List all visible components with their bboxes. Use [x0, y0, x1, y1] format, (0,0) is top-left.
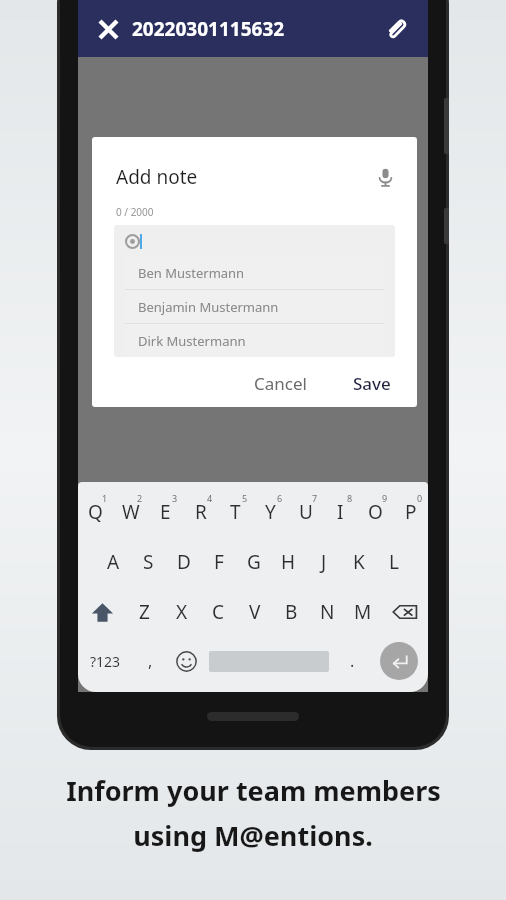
staticText: R — [195, 499, 207, 525]
staticText: , — [148, 650, 153, 672]
button[interactable]: Cancel — [238, 363, 323, 404]
staticText: P — [405, 499, 417, 525]
button[interactable]: O — [358, 488, 393, 536]
staticText: 0 — [417, 492, 423, 504]
button[interactable]: G — [236, 538, 271, 586]
button[interactable]: Q — [78, 488, 113, 536]
staticText: D — [177, 549, 191, 575]
staticText: 4 — [207, 492, 213, 504]
staticText: H — [281, 549, 296, 575]
button[interactable]: Close — [88, 9, 128, 49]
button[interactable]: E — [148, 488, 183, 536]
staticText: 20220301115632 — [132, 16, 285, 42]
staticText: 6 — [277, 492, 283, 504]
staticText: 3 — [172, 492, 178, 504]
staticText: G — [247, 549, 261, 575]
staticText: 0 / 2000 — [116, 205, 154, 219]
staticText: I — [337, 499, 344, 525]
staticText: K — [353, 549, 365, 575]
staticText: S — [143, 549, 154, 575]
staticText: Cancel — [254, 372, 307, 395]
staticText: L — [389, 549, 399, 575]
button[interactable]: Z — [126, 588, 163, 636]
button[interactable]: A — [95, 538, 131, 586]
button[interactable]: Emoji — [168, 636, 204, 686]
button[interactable]: Save — [337, 363, 407, 404]
button[interactable]: P — [393, 488, 428, 536]
button[interactable]: Shift — [78, 588, 126, 636]
button[interactable]: Dirk Mustermann — [125, 324, 384, 357]
staticText: Save — [353, 372, 391, 395]
staticText: Dirk Mustermann — [138, 332, 246, 350]
button[interactable]: Attach file — [376, 9, 416, 49]
staticText: Z — [139, 599, 150, 625]
button[interactable]: S — [131, 538, 166, 586]
button[interactable]: Enter — [370, 636, 428, 686]
staticText: Y — [265, 499, 276, 525]
staticText: E — [160, 499, 171, 525]
staticText: V — [249, 599, 261, 625]
staticText: W — [122, 499, 140, 525]
staticText: . — [350, 650, 355, 672]
staticText: Ben Mustermann — [138, 264, 245, 282]
button[interactable]: C — [200, 588, 237, 636]
staticText: N — [320, 599, 335, 625]
staticText: T — [230, 499, 241, 525]
button[interactable]: H — [271, 538, 306, 586]
button[interactable]: L — [376, 538, 411, 586]
button[interactable]: Backspace — [381, 588, 428, 636]
button[interactable]: M — [345, 588, 381, 636]
button[interactable]: D — [166, 538, 201, 586]
button[interactable]: I — [323, 488, 358, 536]
button[interactable]: Space — [204, 636, 334, 686]
staticText: 9 — [382, 492, 388, 504]
staticText: 7 — [312, 492, 318, 504]
staticText: A — [107, 549, 120, 575]
staticText: F — [214, 549, 224, 575]
button[interactable]: Voice input — [367, 159, 403, 195]
button[interactable]: W — [113, 488, 148, 536]
staticText: 1 — [102, 492, 108, 504]
staticText: 2 — [137, 492, 143, 504]
button[interactable]: U — [288, 488, 323, 536]
staticText: C — [212, 599, 225, 625]
staticText: B — [285, 599, 298, 625]
button[interactable]: Ben Mustermann — [125, 256, 384, 290]
staticText: M — [354, 599, 372, 625]
button[interactable]: X — [163, 588, 200, 636]
staticText: Benjamin Mustermann — [138, 298, 279, 316]
button[interactable]: J — [306, 538, 341, 586]
button[interactable]: . — [334, 636, 370, 686]
button[interactable]: V — [237, 588, 273, 636]
button[interactable]: Y — [253, 488, 288, 536]
staticText: Add note — [116, 164, 198, 190]
button[interactable]: T — [218, 488, 253, 536]
staticText: Inform your team members — [66, 772, 441, 809]
button[interactable]: R — [183, 488, 218, 536]
staticText: ?123 — [90, 652, 121, 671]
button[interactable]: F — [201, 538, 236, 586]
button[interactable]: B — [273, 588, 309, 636]
button[interactable]: Ben Mustermann — [114, 225, 395, 357]
staticText: O — [368, 499, 383, 525]
staticText: 8 — [347, 492, 353, 504]
button[interactable]: , — [132, 636, 168, 686]
button[interactable]: K — [341, 538, 376, 586]
staticText: J — [321, 549, 327, 575]
button[interactable]: Benjamin Mustermann — [125, 290, 384, 324]
staticText: Q — [88, 499, 103, 525]
staticText: 5 — [242, 492, 248, 504]
staticText: X — [176, 599, 188, 625]
staticText: U — [299, 499, 313, 525]
button[interactable]: ?123 — [78, 636, 132, 686]
button[interactable]: N — [309, 588, 345, 636]
staticText: using M@entions. — [133, 817, 373, 854]
